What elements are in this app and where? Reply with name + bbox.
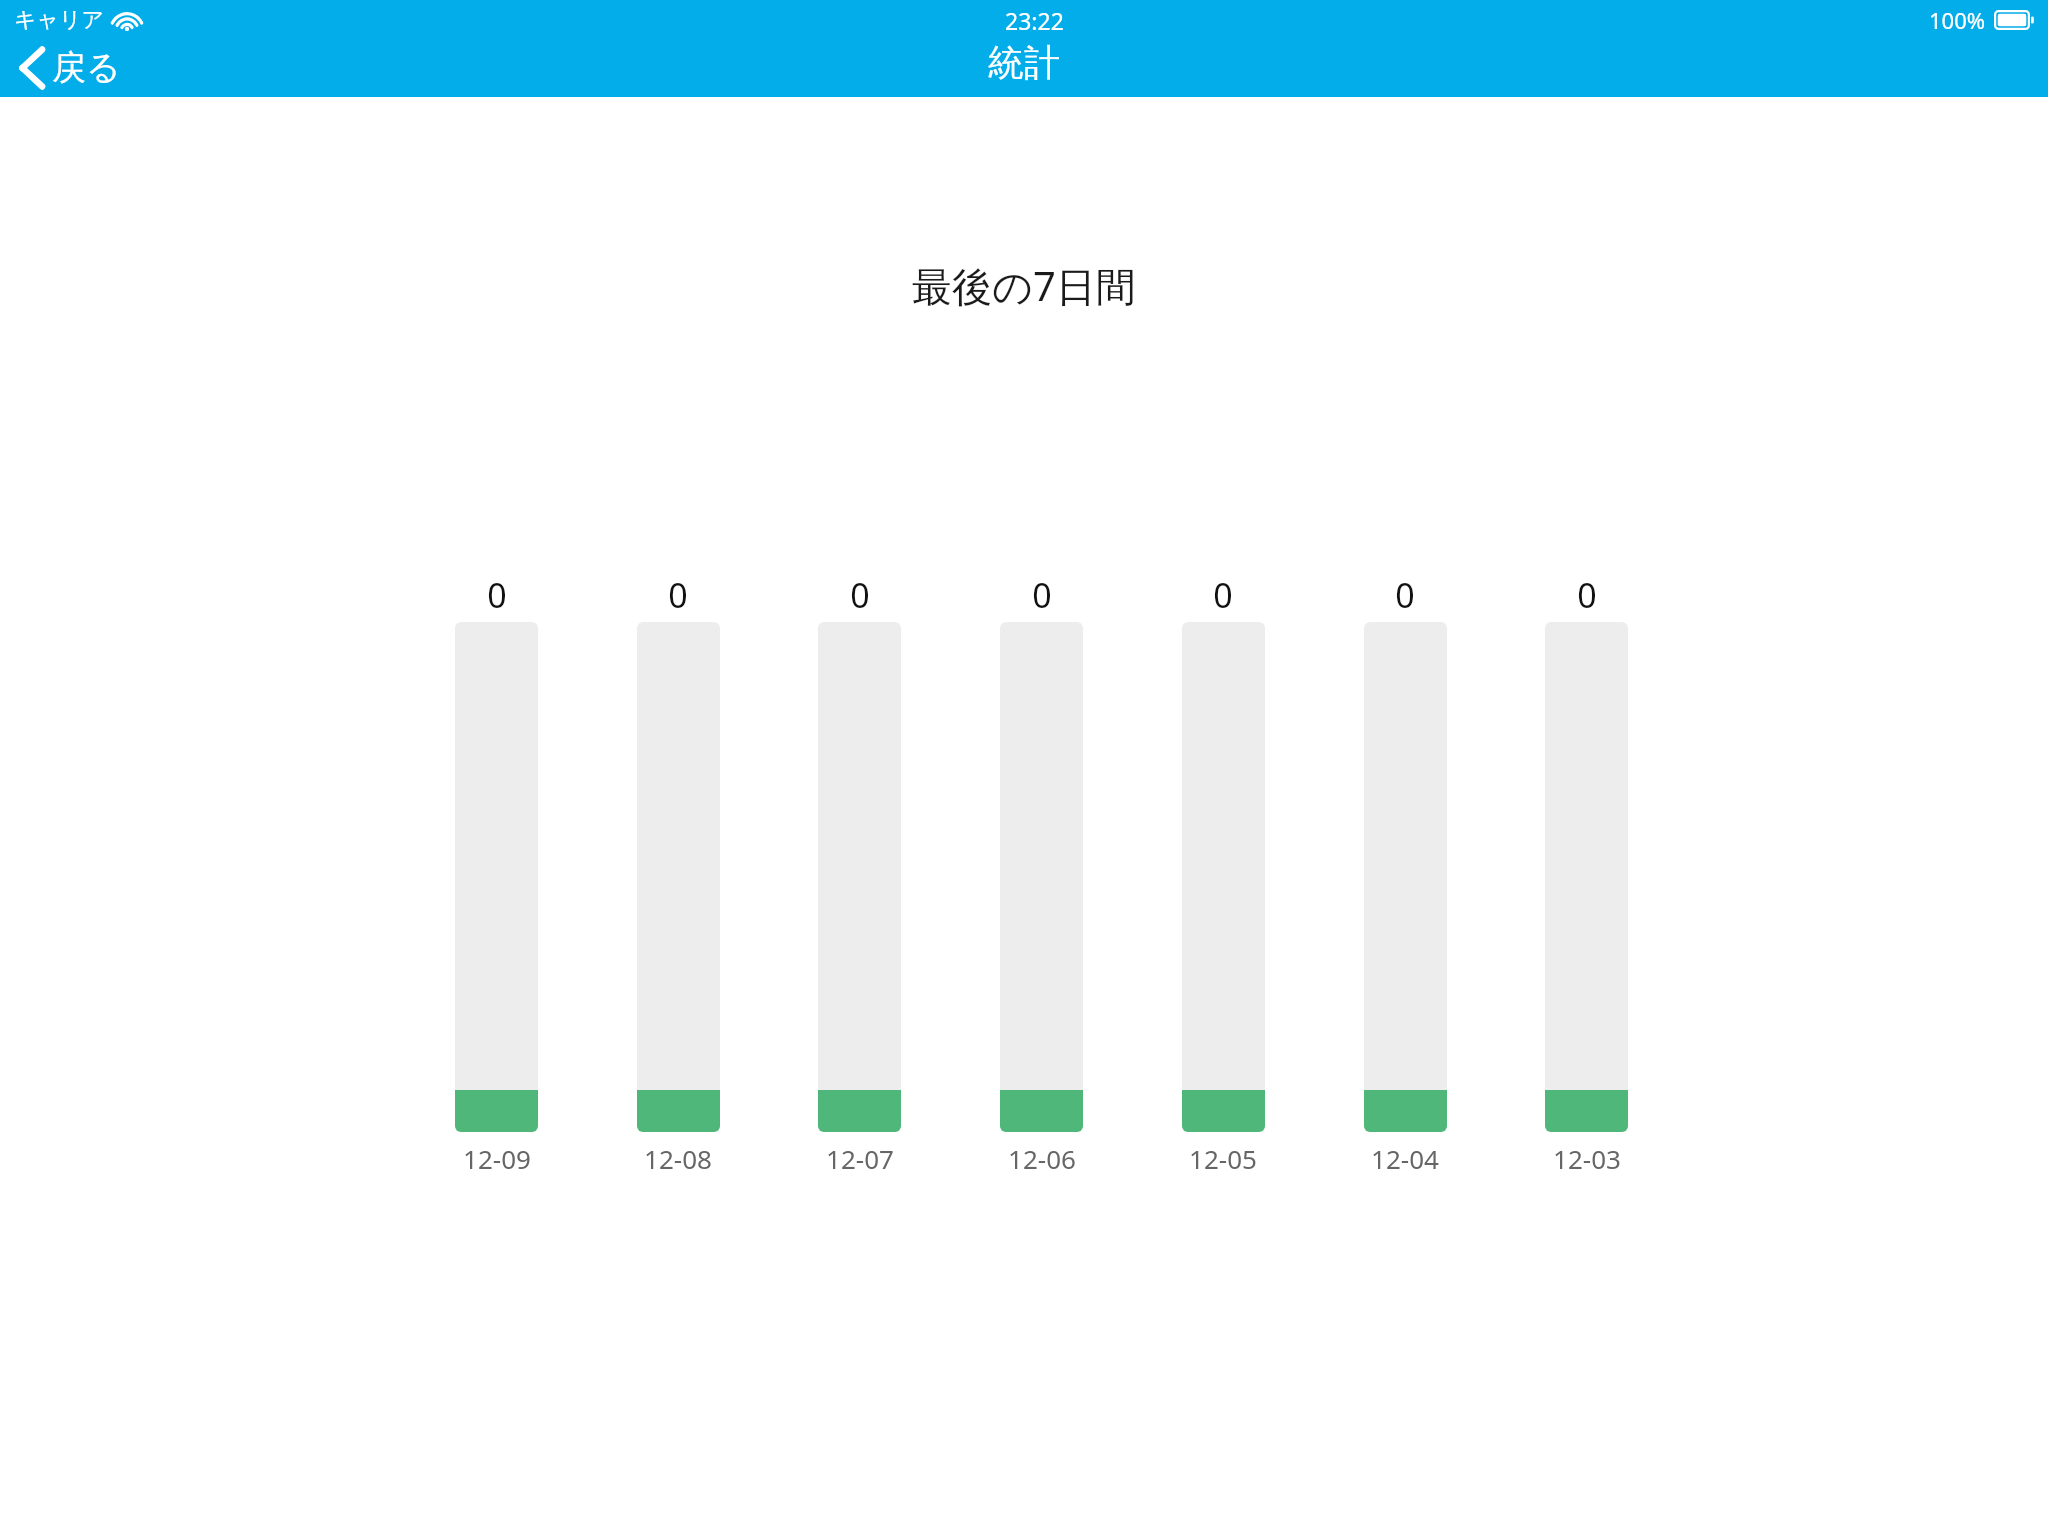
staticText: 23:22	[1005, 5, 1064, 36]
staticText: 12-07	[826, 1141, 894, 1176]
staticText: 12-08	[644, 1141, 712, 1176]
button[interactable]	[637, 622, 720, 1132]
staticText: 12-03	[1553, 1141, 1621, 1176]
other: Battery	[1994, 10, 2034, 30]
button[interactable]	[455, 622, 538, 1132]
other: Wi-Fi	[113, 9, 141, 31]
staticText: 0	[1032, 572, 1052, 618]
button[interactable]: Back	[14, 42, 127, 93]
staticText: 0	[1213, 572, 1233, 618]
staticText: 12-06	[1008, 1141, 1076, 1176]
button[interactable]	[818, 622, 901, 1132]
other: Back	[20, 47, 44, 89]
staticText: 0	[1395, 572, 1415, 618]
staticText: 12-04	[1371, 1141, 1439, 1176]
staticText: 100%	[1929, 5, 1986, 35]
staticText: 12-05	[1189, 1141, 1257, 1176]
staticText: 統計	[988, 40, 1060, 85]
staticText: 0	[668, 572, 688, 618]
staticText: 0	[850, 572, 870, 618]
staticText: 12-09	[463, 1141, 531, 1176]
staticText: 0	[1577, 572, 1597, 618]
staticText: キャリア	[14, 6, 105, 34]
staticText: 0	[487, 572, 507, 618]
button[interactable]	[1182, 622, 1265, 1132]
button[interactable]	[1545, 622, 1628, 1132]
button[interactable]	[1000, 622, 1083, 1132]
staticText: 戻る	[52, 46, 121, 89]
staticText: 最後の7日間	[912, 258, 1136, 313]
button[interactable]	[1364, 622, 1447, 1132]
